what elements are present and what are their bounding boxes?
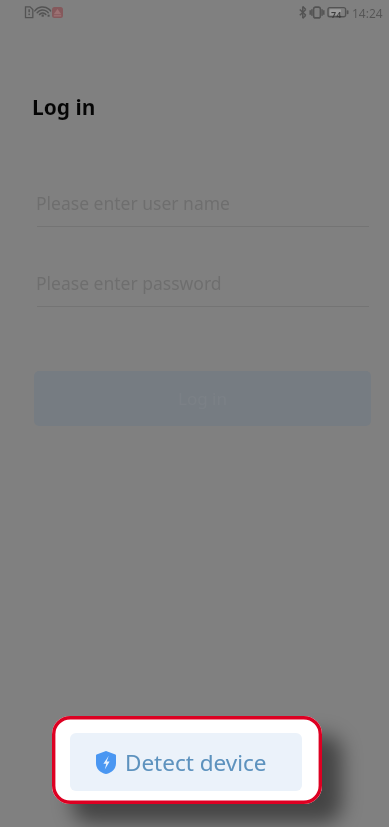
staticText: Please enter user name [36, 191, 230, 215]
staticText: Log in [32, 93, 96, 122]
staticText: Detect device [125, 747, 267, 778]
staticText: 74 [331, 8, 342, 20]
staticText: Please enter password [36, 271, 222, 295]
button[interactable]: Detect device [70, 733, 302, 791]
staticText: 14:24 [352, 5, 383, 21]
